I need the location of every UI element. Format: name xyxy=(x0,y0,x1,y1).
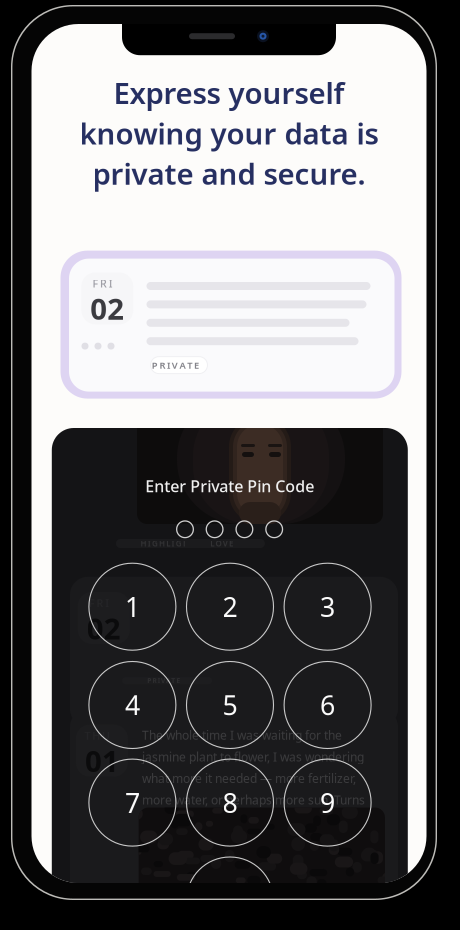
button[interactable]: 2 xyxy=(186,563,273,650)
staticText: FRI xyxy=(89,596,119,610)
button[interactable]: 1 xyxy=(89,563,176,650)
staticText: 01 xyxy=(85,741,119,780)
staticText: what more it needed — more fertilizer, xyxy=(142,770,356,786)
staticText: 8 xyxy=(222,785,237,820)
staticText: 3 xyxy=(320,589,335,624)
staticText: HIGHLIGHT xyxy=(140,538,201,549)
button[interactable]: 9 xyxy=(284,759,371,846)
button[interactable]: 0 xyxy=(186,857,273,930)
staticText: private and secure. xyxy=(92,154,365,193)
button[interactable]: 4 xyxy=(89,661,176,748)
staticText: knowing your data is xyxy=(79,113,378,152)
button[interactable]: PRIVATE xyxy=(150,357,207,374)
staticText: 9 xyxy=(320,785,335,820)
staticText: 4 xyxy=(125,687,140,723)
staticText: 5 xyxy=(222,687,237,723)
staticText: 0 xyxy=(222,883,237,918)
staticText: PRIVATE xyxy=(152,359,206,371)
staticText: Express yourself xyxy=(113,73,344,112)
staticText: 6 xyxy=(320,687,335,723)
staticText: 02 xyxy=(87,608,121,647)
staticText: PRIVATE xyxy=(147,676,187,685)
button[interactable]: 3 xyxy=(284,563,371,650)
button[interactable]: 6 xyxy=(284,661,371,748)
staticText: 2 xyxy=(222,589,237,624)
staticText: Enter Private Pin Code xyxy=(145,475,314,497)
staticText: LOVE xyxy=(210,538,239,549)
staticText: jasmine plant to flower, I was wondering xyxy=(142,749,364,765)
staticText: The whole time I was waiting for the xyxy=(142,727,342,743)
staticText: 7 xyxy=(125,785,140,820)
button[interactable]: 7 xyxy=(89,759,176,846)
staticText: 02 xyxy=(90,289,124,328)
staticText: THU xyxy=(84,728,119,743)
button[interactable]: 5 xyxy=(186,661,273,748)
button[interactable]: 8 xyxy=(186,759,273,846)
staticText: more water, or perhaps more sun. Turns xyxy=(142,792,365,808)
staticText: FRI xyxy=(92,276,122,290)
staticText: 1 xyxy=(125,589,140,624)
